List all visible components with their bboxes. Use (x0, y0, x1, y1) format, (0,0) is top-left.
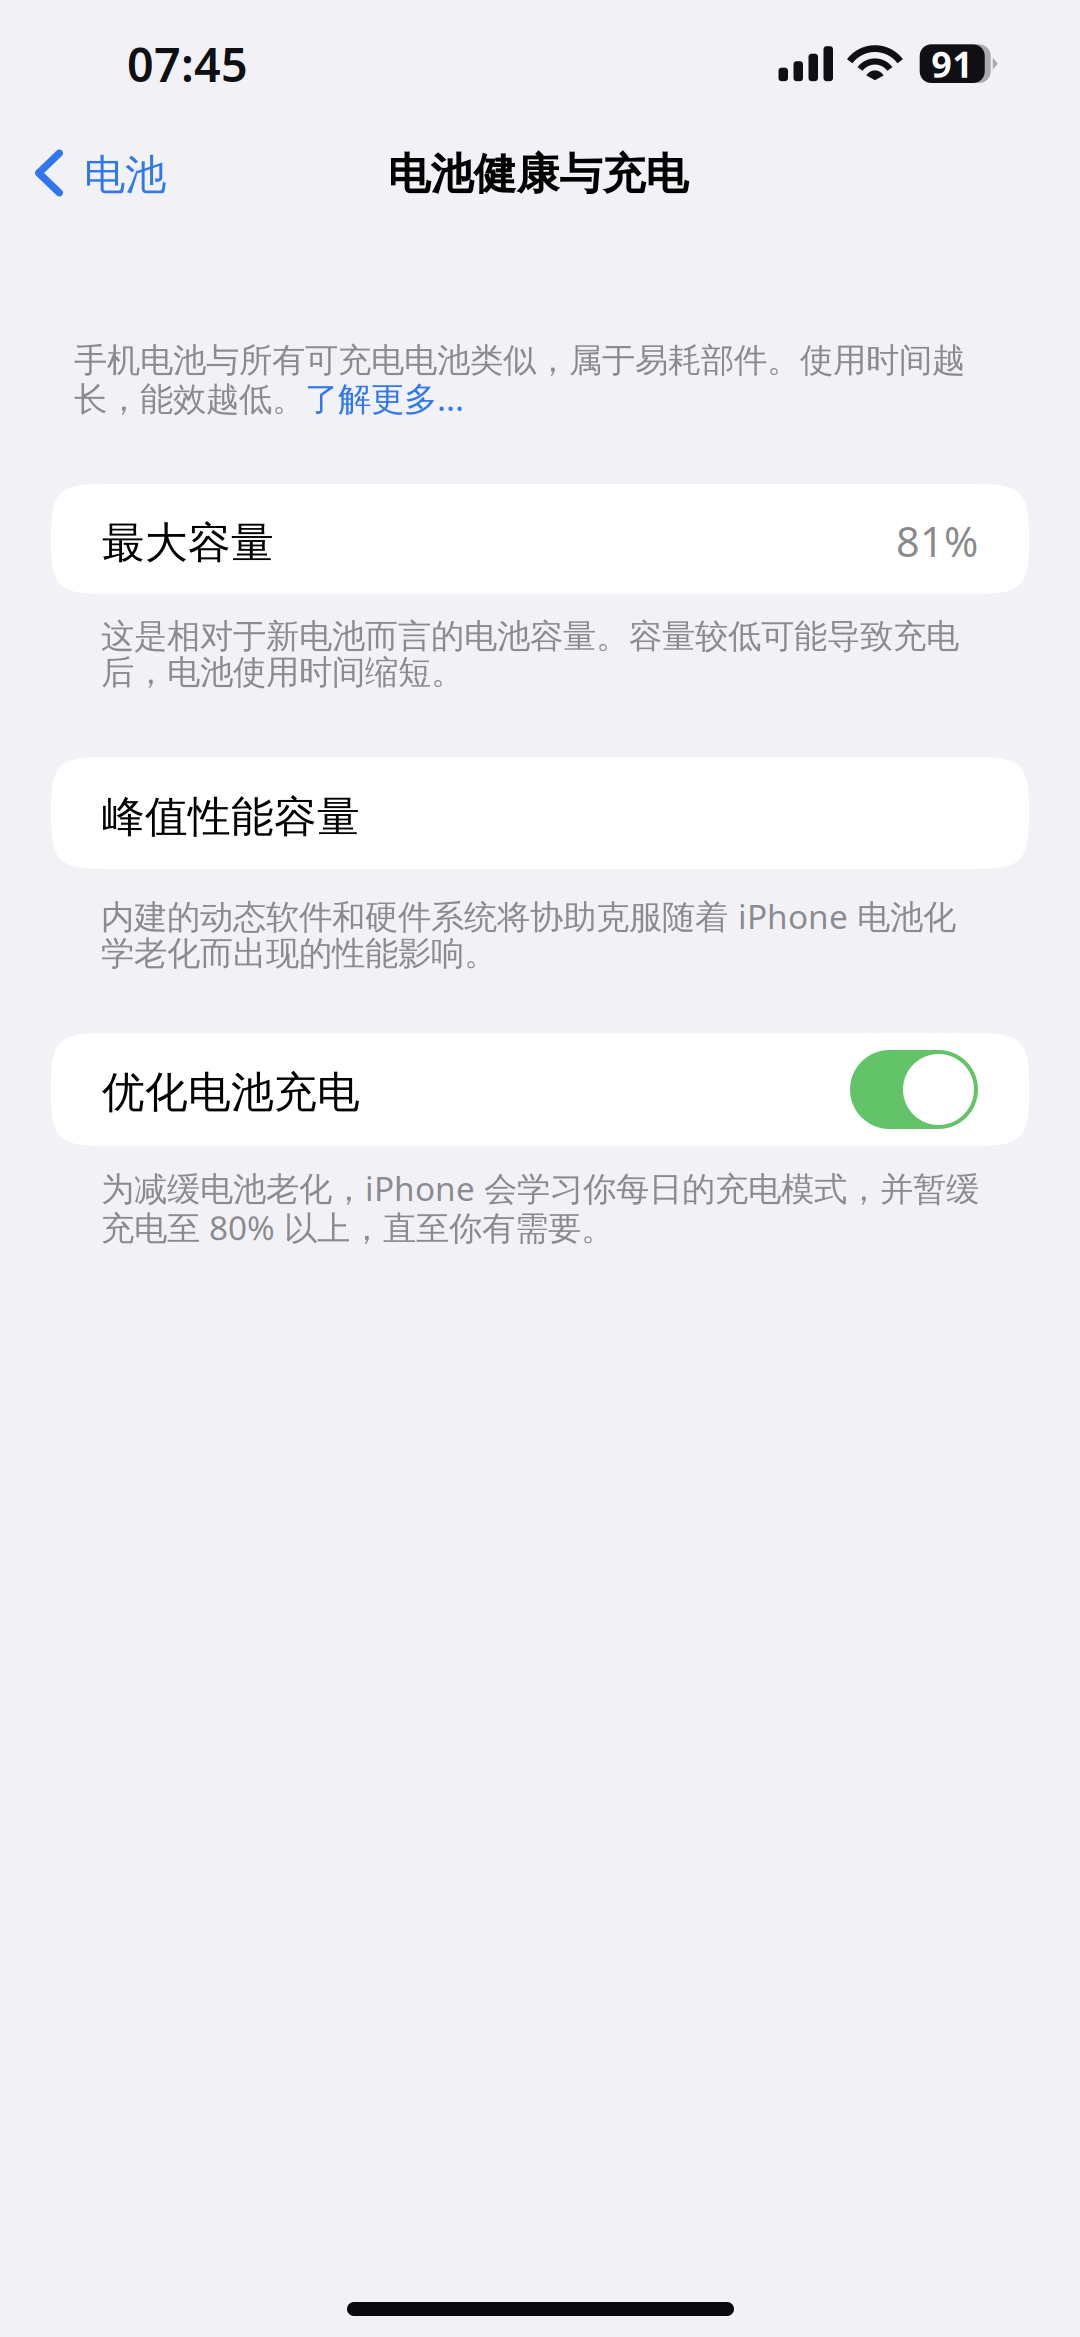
staticText: 电池 (84, 150, 166, 200)
staticText: 电池健康与充电 (387, 148, 688, 200)
button[interactable]: 峰值性能容量 (51, 757, 1029, 869)
staticText: 内建的动态软件和硬件系统将协助克服随着 iPhone 电池化学老化而出现的性能影… (101, 894, 956, 974)
button[interactable]: 电池 (0, 127, 230, 219)
staticText: 峰值性能容量 (102, 791, 360, 843)
staticText: 这是相对于新电池而言的电池容量。容量较低可能导致充电后，电池使用时间缩短。 (101, 616, 959, 693)
staticText: 91 (931, 40, 973, 88)
staticText: 07:45 (127, 33, 248, 95)
button[interactable]: 优化电池充电 (51, 1033, 1029, 1146)
button[interactable]: 最大容量 (51, 484, 1029, 594)
staticText: 81% (896, 514, 978, 568)
staticText: 手机电池与所有可充电电池类似，属于易耗部件。使用时间越长，能效越低。了解更多..… (74, 340, 965, 420)
staticText: 优化电池充电 (102, 1066, 360, 1119)
staticText: 最大容量 (102, 517, 274, 569)
staticText: 为减缓电池老化，iPhone 会学习你每日的充电模式，并暂缓充电至 80% 以上… (101, 1166, 979, 1249)
